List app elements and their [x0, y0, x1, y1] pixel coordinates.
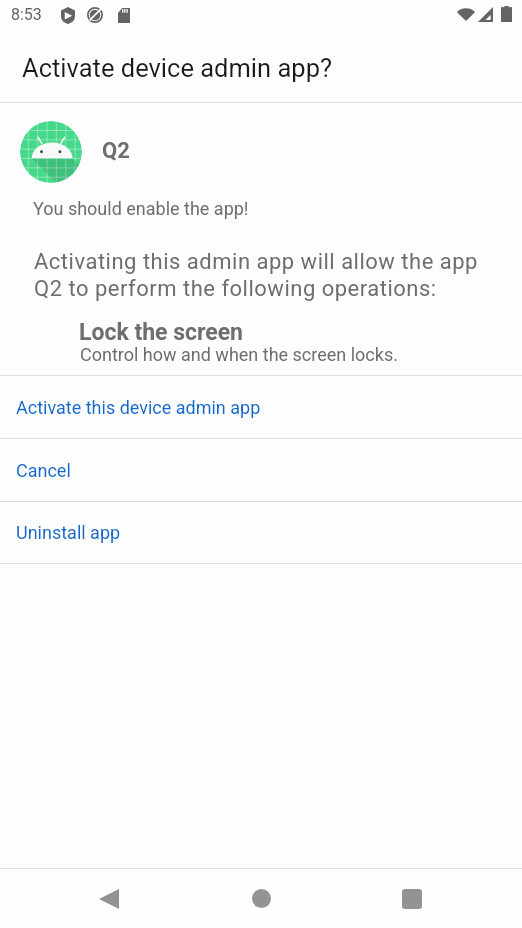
- button[interactable]: Home: [211, 869, 311, 928]
- staticText: Control how and when the screen locks.: [80, 344, 398, 365]
- button[interactable]: Cancel: [0, 439, 522, 501]
- staticText: Uninstall app: [16, 522, 121, 543]
- button[interactable]: Recent apps: [362, 869, 462, 928]
- staticText: Activate device admin app?: [22, 53, 333, 83]
- button[interactable]: Activate this device admin app: [0, 376, 522, 438]
- staticText: You should enable the app!: [33, 198, 249, 219]
- staticText: Cancel: [16, 460, 71, 481]
- staticText: Q2: [102, 138, 130, 164]
- staticText: Activating this admin app will allow the…: [34, 249, 480, 301]
- staticText: Activate this device admin app: [16, 397, 261, 418]
- button[interactable]: Uninstall app: [0, 502, 522, 563]
- button[interactable]: Back: [59, 869, 159, 928]
- staticText: Lock the screen: [79, 319, 243, 346]
- staticText: 8:53: [11, 5, 42, 24]
